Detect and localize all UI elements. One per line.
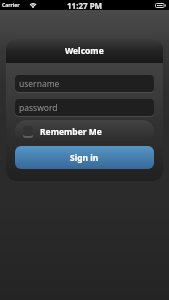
button[interactable]: Remember Me xyxy=(15,120,154,143)
staticText: username xyxy=(19,78,60,90)
button[interactable]: Sign in xyxy=(15,146,154,169)
staticText: Remember Me xyxy=(40,126,102,138)
other: Wi-Fi signal xyxy=(29,3,37,8)
button[interactable]: password xyxy=(15,99,154,116)
button[interactable]: username xyxy=(15,75,154,92)
staticText: password xyxy=(19,102,58,114)
staticText: Welcome xyxy=(65,45,104,57)
staticText: 11:27 PM xyxy=(67,0,103,10)
other: Battery xyxy=(155,3,166,8)
staticText: Carrier xyxy=(2,2,20,9)
staticText: Sign in xyxy=(70,152,99,164)
